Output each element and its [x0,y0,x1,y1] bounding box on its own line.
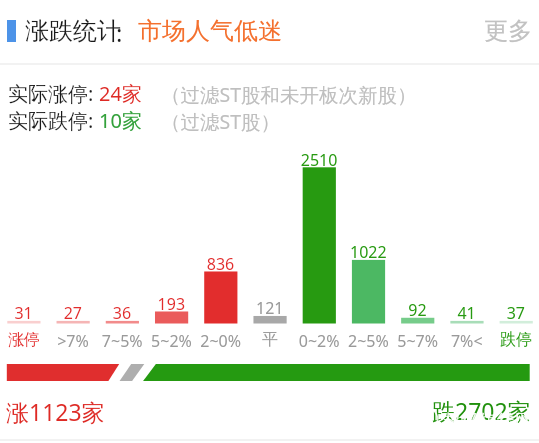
staticText: : [116,16,123,49]
staticText: 更多 [484,16,532,46]
staticText: 涨跌统计 [25,16,121,46]
staticText: 涨1123家 [6,396,105,427]
staticText: （过滤ST股） [161,108,281,135]
button[interactable]: 跌2702家 [432,395,531,426]
staticText: （过滤ST股和未开板次新股） [161,81,417,108]
staticText: 实际涨停: [8,80,94,107]
button[interactable]: 更多 [478,13,532,46]
staticText: 市场人气低迷 [138,16,282,46]
staticText: 实际跌停: [8,107,94,134]
staticText: 24家 [99,80,142,107]
staticText: 跌2702家 [432,395,531,426]
button[interactable] [0,0,539,63]
staticText: 10家 [99,107,142,134]
button[interactable]: 涨1123家 [6,396,105,427]
